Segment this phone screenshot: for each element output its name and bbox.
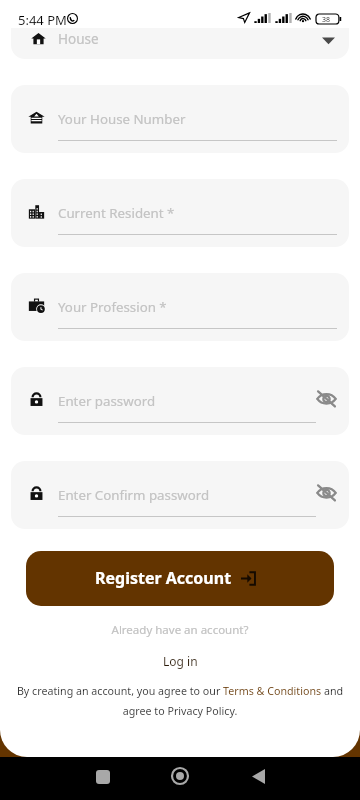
button[interactable]: Recents: [86, 760, 120, 794]
button[interactable]: Select house type: [322, 34, 335, 47]
button[interactable]: Toggle password visibility: [316, 388, 337, 409]
staticText: Enter Confirm password: [58, 486, 210, 504]
button[interactable]: Enter password: [11, 367, 349, 435]
staticText: House: [58, 30, 99, 48]
button[interactable]: Current Resident *: [11, 179, 349, 247]
button[interactable]: Enter Confirm password: [11, 461, 349, 529]
button[interactable]: Your House Number: [11, 85, 349, 153]
button[interactable]: Log in: [153, 650, 208, 672]
staticText: 5:44 PM: [18, 11, 67, 29]
staticText: Your Profession *: [58, 298, 167, 316]
staticText: 38: [322, 15, 331, 25]
staticText: Already have an account?: [0, 622, 360, 638]
staticText: Your House Number: [58, 110, 186, 128]
button[interactable]: Your Profession *: [11, 273, 349, 341]
staticText: By creating an account, you agree to our…: [2, 684, 358, 718]
staticText: Register Account: [95, 567, 232, 589]
button[interactable]: House: [11, 28, 349, 59]
staticText: Current Resident *: [58, 204, 175, 222]
button[interactable]: Back: [241, 759, 275, 793]
staticText: Enter password: [58, 392, 156, 410]
button[interactable]: Home: [163, 759, 197, 793]
button[interactable]: Toggle password visibility: [316, 482, 337, 503]
button[interactable]: Register Account: [26, 551, 334, 606]
